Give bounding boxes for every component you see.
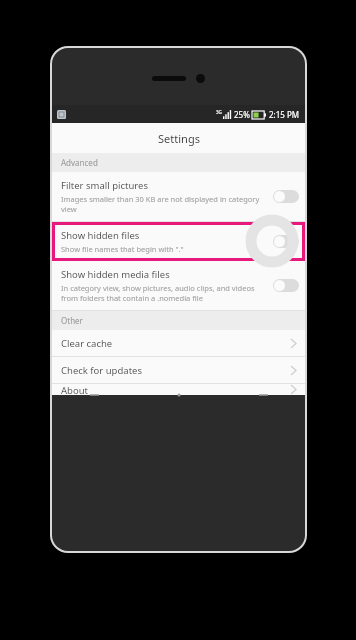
staticText: Show hidden media files: [61, 268, 170, 281]
staticText: Show file names that begin with ".": [61, 244, 184, 254]
staticText: 2:15 PM: [269, 109, 300, 120]
button[interactable]: Clear cache: [52, 330, 305, 357]
staticText: Clear cache: [61, 337, 291, 350]
button[interactable]: Toggle: [273, 190, 299, 203]
staticText: Check for updates: [61, 364, 291, 377]
button[interactable]: Show hidden media files: [52, 261, 305, 311]
button[interactable]: Toggle: [273, 279, 299, 292]
button[interactable]: Toggle: [273, 235, 299, 248]
staticText: Other: [61, 315, 83, 326]
staticText: Settings: [158, 131, 200, 146]
button[interactable]: Show hidden files: [52, 222, 305, 261]
button[interactable]: Filter small pictures: [52, 172, 305, 222]
staticText: Advanced: [61, 157, 98, 168]
staticText: Show hidden files: [61, 229, 140, 242]
button[interactable]: Check for updates: [52, 357, 305, 384]
staticText: Images smaller than 30 KB are not displa…: [61, 194, 267, 214]
staticText: About: [61, 384, 291, 395]
staticText: 25%: [234, 109, 250, 120]
staticText: 3G: [216, 109, 222, 115]
button[interactable]: About: [52, 384, 305, 395]
staticText: In category view, show pictures, audio c…: [61, 283, 267, 303]
staticText: Filter small pictures: [61, 179, 148, 192]
